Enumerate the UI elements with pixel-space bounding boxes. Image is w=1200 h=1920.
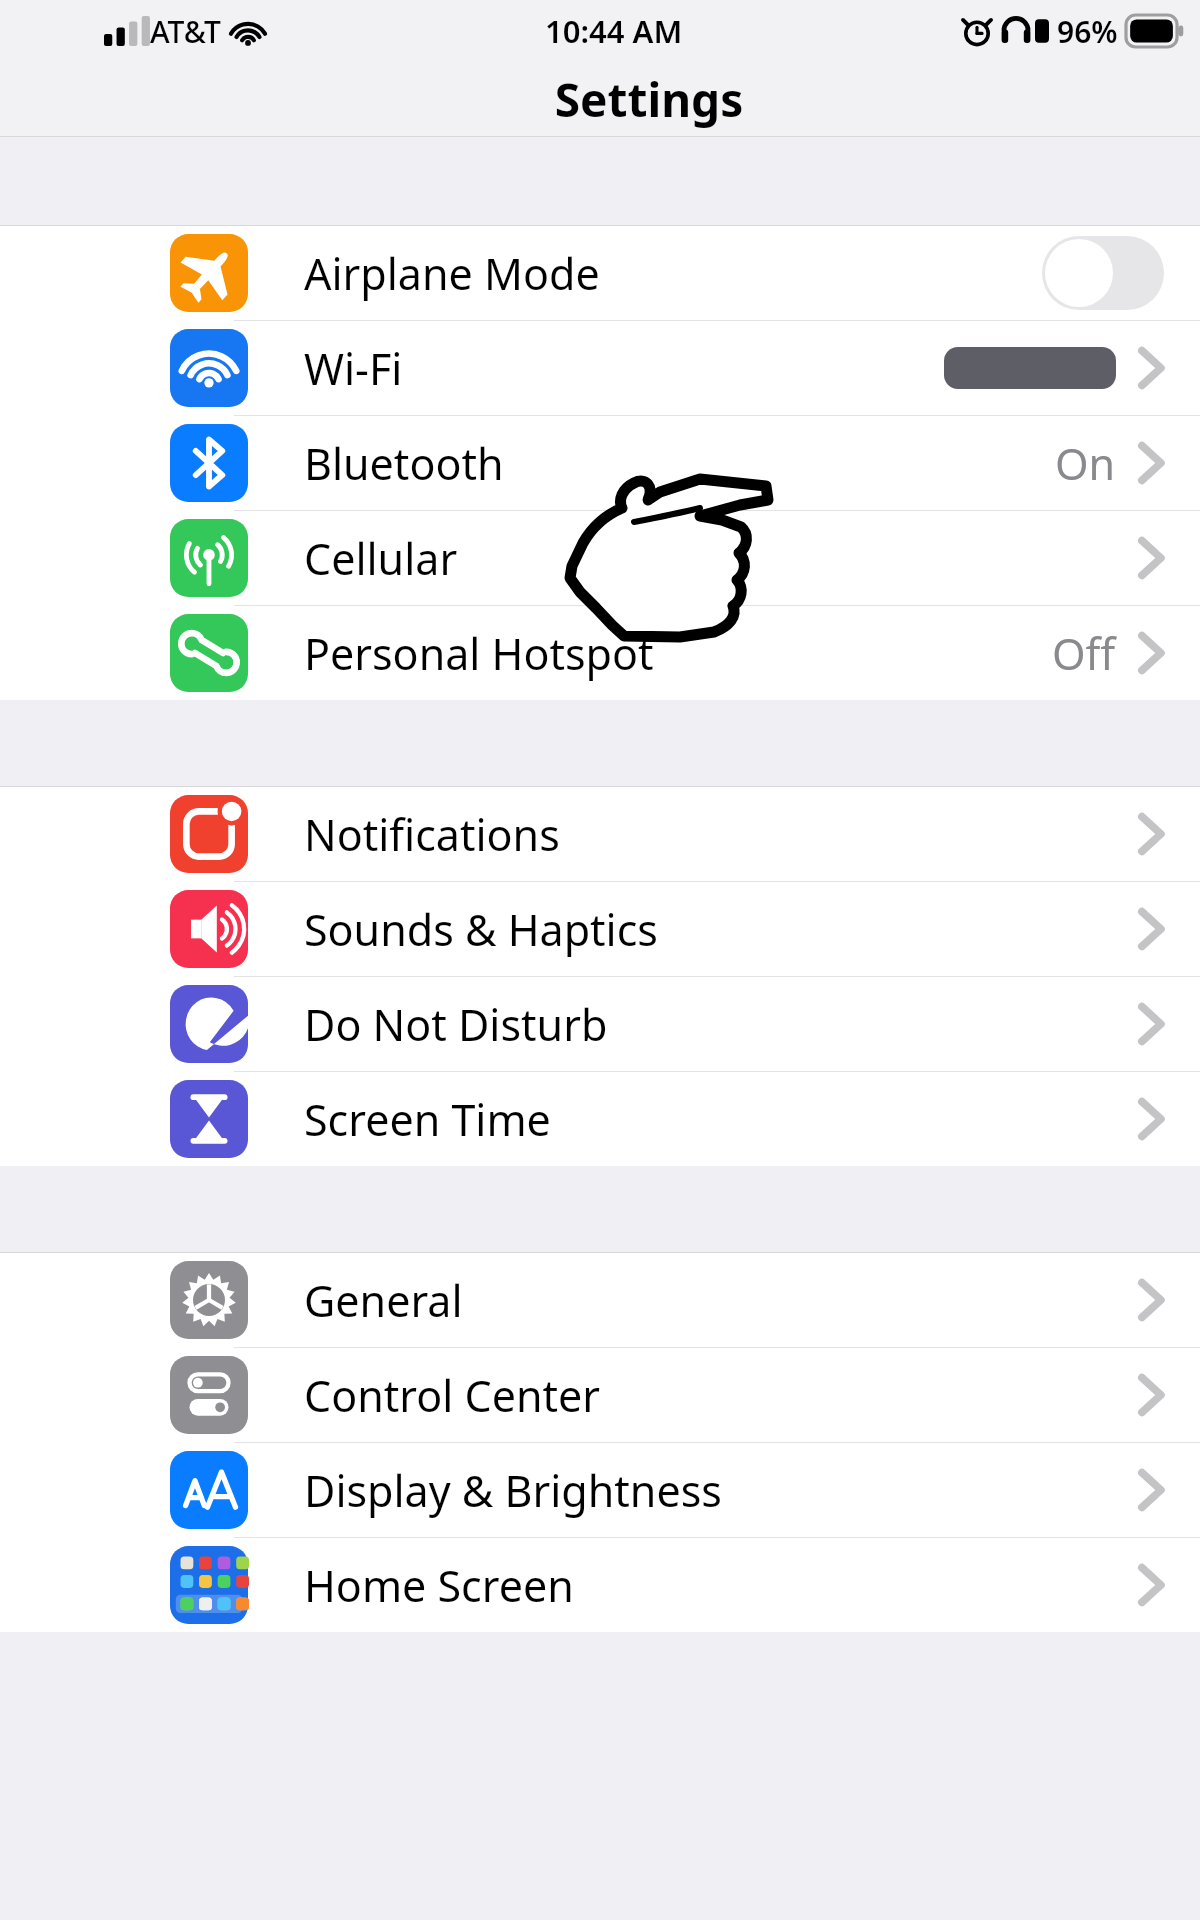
- button[interactable]: Do Not Disturb: [0, 977, 1200, 1071]
- button[interactable]: Screen Time: [0, 1072, 1200, 1166]
- staticText: Settings: [98, 68, 1200, 131]
- button[interactable]: Personal Hotspot: [0, 606, 1200, 700]
- staticText: Do Not Disturb: [304, 995, 608, 1054]
- staticText: Home Screen: [304, 1556, 574, 1615]
- button[interactable]: General: [0, 1253, 1200, 1347]
- staticText: Personal Hotspot: [304, 624, 654, 683]
- button[interactable]: Wi-Fi: [0, 321, 1200, 415]
- button[interactable]: Home Screen: [0, 1538, 1200, 1632]
- staticText: General: [304, 1271, 463, 1330]
- staticText: Display & Brightness: [304, 1461, 722, 1520]
- button[interactable]: Sounds & Haptics: [0, 882, 1200, 976]
- staticText: Screen Time: [304, 1090, 551, 1149]
- button[interactable]: Airplane Mode toggle: [1042, 236, 1164, 310]
- button[interactable]: Display & Brightness: [0, 1443, 1200, 1537]
- button[interactable]: Airplane Mode: [0, 226, 1200, 320]
- staticText: Control Center: [304, 1366, 601, 1425]
- staticText: Cellular: [304, 529, 458, 588]
- staticText: 10:44 AM: [545, 10, 683, 52]
- staticText: Off: [1052, 624, 1116, 683]
- staticText: Notifications: [304, 805, 560, 864]
- staticText: 96%: [1057, 11, 1118, 52]
- staticText: Wi-Fi: [304, 339, 403, 398]
- staticText: On: [1055, 434, 1116, 493]
- button[interactable]: Cellular: [0, 511, 1200, 605]
- staticText: Bluetooth: [304, 434, 504, 493]
- button[interactable]: Bluetooth: [0, 416, 1200, 510]
- button[interactable]: Control Center: [0, 1348, 1200, 1442]
- staticText: Sounds & Haptics: [304, 900, 658, 959]
- staticText: Airplane Mode: [304, 244, 600, 303]
- staticText: AT&T: [150, 11, 221, 52]
- button[interactable]: Notifications: [0, 787, 1200, 881]
